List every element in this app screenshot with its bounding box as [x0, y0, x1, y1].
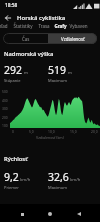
staticText: m	[24, 70, 28, 76]
staticText: 32,6	[48, 170, 69, 184]
staticText: 0	[12, 129, 14, 133]
staticText: 200	[2, 115, 8, 119]
staticText: 9,2	[4, 170, 19, 184]
staticText: 10,0	[48, 129, 55, 133]
staticText: Maximum	[48, 78, 67, 83]
button[interactable]: Štatistiky	[10, 21, 35, 30]
button[interactable]: Grafy	[52, 21, 69, 30]
staticText: Stúpanie	[4, 78, 21, 83]
staticText: 15,0	[70, 129, 77, 133]
staticText: 500	[2, 89, 8, 93]
button[interactable]: Trasa	[35, 21, 52, 30]
staticText: Štatistiky	[13, 23, 33, 29]
staticText: 100	[2, 123, 8, 127]
staticText: Vzdialenosť	[61, 36, 85, 42]
button[interactable]: Vzdialenosť	[48, 33, 97, 44]
button[interactable]: Vybavenie	[69, 21, 88, 30]
staticText: km/h	[20, 177, 31, 183]
staticText: Trasa	[38, 23, 50, 29]
button[interactable]: Recent apps	[15, 207, 29, 221]
staticText: Vybavenie	[69, 23, 88, 29]
staticText: Rýchlosť	[4, 155, 28, 163]
staticText: 400	[2, 98, 8, 102]
staticText: 300	[2, 106, 8, 110]
staticText: Čas	[22, 36, 30, 42]
staticText: Maximum	[48, 185, 67, 190]
staticText: Vzdialenosť (km)	[36, 135, 64, 140]
staticText: Priemer	[4, 185, 20, 190]
staticText: km/h	[70, 177, 81, 183]
button[interactable]: Čas	[3, 33, 48, 44]
staticText: Prehľad	[0, 23, 8, 29]
button[interactable]: Back	[2, 12, 13, 23]
staticText: Grafy	[54, 23, 67, 29]
staticText: 5,0	[29, 129, 34, 133]
button[interactable]: Prehľad	[0, 21, 10, 30]
staticText: 18:58	[5, 2, 18, 9]
staticText: 20,0	[91, 129, 98, 133]
staticText: m	[68, 70, 72, 76]
staticText: Horská cyklistika	[17, 14, 66, 22]
staticText: 519	[48, 63, 67, 77]
button[interactable]: Home	[43, 207, 57, 221]
staticText: Nadmorská výška	[4, 50, 54, 58]
button[interactable]: Back	[72, 207, 86, 221]
staticText: 292	[4, 63, 23, 77]
